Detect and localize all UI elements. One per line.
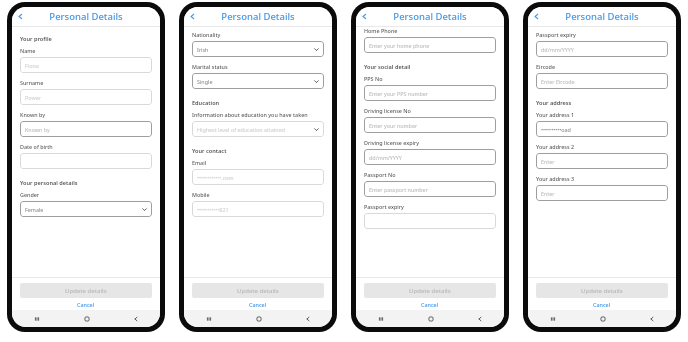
staticText: Name [20, 47, 36, 54]
button[interactable]: Back [356, 7, 372, 26]
staticText: Personal Details [393, 10, 467, 23]
staticText: Your address 1 [536, 111, 574, 118]
staticText: Enter [541, 158, 663, 165]
staticText: Cancel [249, 301, 267, 308]
staticText: dd/mm/YYYY [369, 154, 491, 161]
staticText: PPS No [364, 75, 383, 82]
button[interactable]: Update details [20, 283, 152, 298]
staticText: •••••••••••821 [197, 206, 319, 213]
button[interactable]: Back [12, 7, 28, 26]
button[interactable]: ••••••••••oad [536, 121, 668, 137]
staticText: Cancel [421, 301, 439, 308]
button[interactable]: Cancel [192, 298, 324, 310]
button[interactable] [364, 213, 496, 229]
staticText: Passport expiry [536, 31, 576, 38]
staticText: Passport expiry [364, 203, 404, 210]
button[interactable] [20, 153, 152, 169]
button[interactable]: Update details [364, 283, 496, 298]
staticText: Marital status [192, 63, 228, 70]
staticText: Your address 3 [536, 175, 574, 182]
staticText: Driving license No [364, 107, 411, 114]
button[interactable]: Back [283, 310, 332, 327]
button[interactable]: dd/mm/YYYY [364, 149, 496, 165]
button[interactable]: Enter [536, 185, 668, 201]
button[interactable]: Female [20, 201, 152, 217]
button[interactable]: Power [20, 89, 152, 105]
staticText: Power [25, 94, 147, 101]
button[interactable]: Update details [536, 283, 668, 298]
staticText: Personal Details [49, 10, 123, 23]
button[interactable]: Home [578, 310, 627, 327]
button[interactable]: Enter your home phone [364, 37, 496, 53]
button[interactable]: Recent apps [356, 310, 406, 327]
button[interactable]: Recent apps [528, 310, 578, 327]
staticText: Eircode [536, 63, 556, 70]
button[interactable]: Home [406, 310, 455, 327]
staticText: Update details [409, 287, 451, 295]
button[interactable]: Enter passport number [364, 181, 496, 197]
button[interactable]: Single [192, 73, 324, 89]
button[interactable]: Enter [536, 153, 668, 169]
button[interactable]: Back [528, 7, 544, 26]
staticText: Enter your home phone [369, 42, 491, 49]
staticText: Surname [20, 79, 44, 86]
staticText: Nationality [192, 31, 221, 38]
staticText: Date of birth [20, 143, 53, 150]
button[interactable]: Cancel [364, 298, 496, 310]
staticText: Enter [541, 190, 663, 197]
staticText: ••••••••••oad [541, 126, 663, 133]
staticText: Driving license expiry [364, 139, 420, 146]
button[interactable]: Enter Eircode [536, 73, 668, 89]
button[interactable]: Home [234, 310, 283, 327]
staticText: Your address 2 [536, 143, 574, 150]
button[interactable]: Back [455, 310, 504, 327]
staticText: Known by [25, 126, 147, 133]
button[interactable]: dd/mm/YYYY [536, 41, 668, 57]
button[interactable]: Enter your PPS number [364, 85, 496, 101]
button[interactable]: Fiona [20, 57, 152, 73]
button[interactable]: Home [62, 310, 111, 327]
button[interactable]: Update details [192, 283, 324, 298]
staticText: Personal Details [565, 10, 639, 23]
staticText: Enter your number [369, 122, 491, 129]
staticText: Your address [536, 99, 572, 107]
staticText: Enter passport number [369, 186, 491, 193]
button[interactable]: Irish [192, 41, 324, 57]
button[interactable]: Highest level of education attained [192, 121, 324, 137]
staticText: Update details [65, 287, 107, 295]
staticText: ••••••••••••.com [197, 174, 319, 181]
staticText: Fiona [25, 62, 147, 69]
staticText: Your contact [192, 147, 227, 155]
button[interactable]: Back [184, 7, 200, 26]
staticText: Education [192, 99, 220, 107]
button[interactable]: Enter your number [364, 117, 496, 133]
button[interactable]: Cancel [20, 298, 152, 310]
staticText: Single [197, 78, 314, 85]
button[interactable]: Back [627, 310, 676, 327]
staticText: Your personal details [20, 179, 78, 187]
staticText: Cancel [77, 301, 95, 308]
staticText: Passport No [364, 171, 396, 178]
staticText: Enter your PPS number [369, 90, 491, 97]
staticText: Enter Eircode [541, 78, 663, 85]
staticText: dd/mm/YYYY [541, 46, 663, 53]
staticText: Highest level of education attained [197, 126, 314, 133]
staticText: Your profile [20, 35, 52, 43]
button[interactable]: •••••••••••821 [192, 201, 324, 217]
staticText: Home Phone [364, 27, 398, 34]
staticText: Update details [237, 287, 279, 295]
button[interactable]: Recent apps [12, 310, 62, 327]
staticText: Information about education you have tak… [192, 111, 308, 118]
button[interactable]: Recent apps [184, 310, 234, 327]
button[interactable]: Known by [20, 121, 152, 137]
staticText: Your social detail [364, 63, 411, 71]
button[interactable]: Cancel [536, 298, 668, 310]
staticText: Gender [20, 191, 40, 198]
staticText: Mobile [192, 191, 210, 198]
button[interactable]: Back [111, 310, 160, 327]
staticText: Update details [581, 287, 623, 295]
button[interactable]: ••••••••••••.com [192, 169, 324, 185]
staticText: Email [192, 159, 207, 166]
